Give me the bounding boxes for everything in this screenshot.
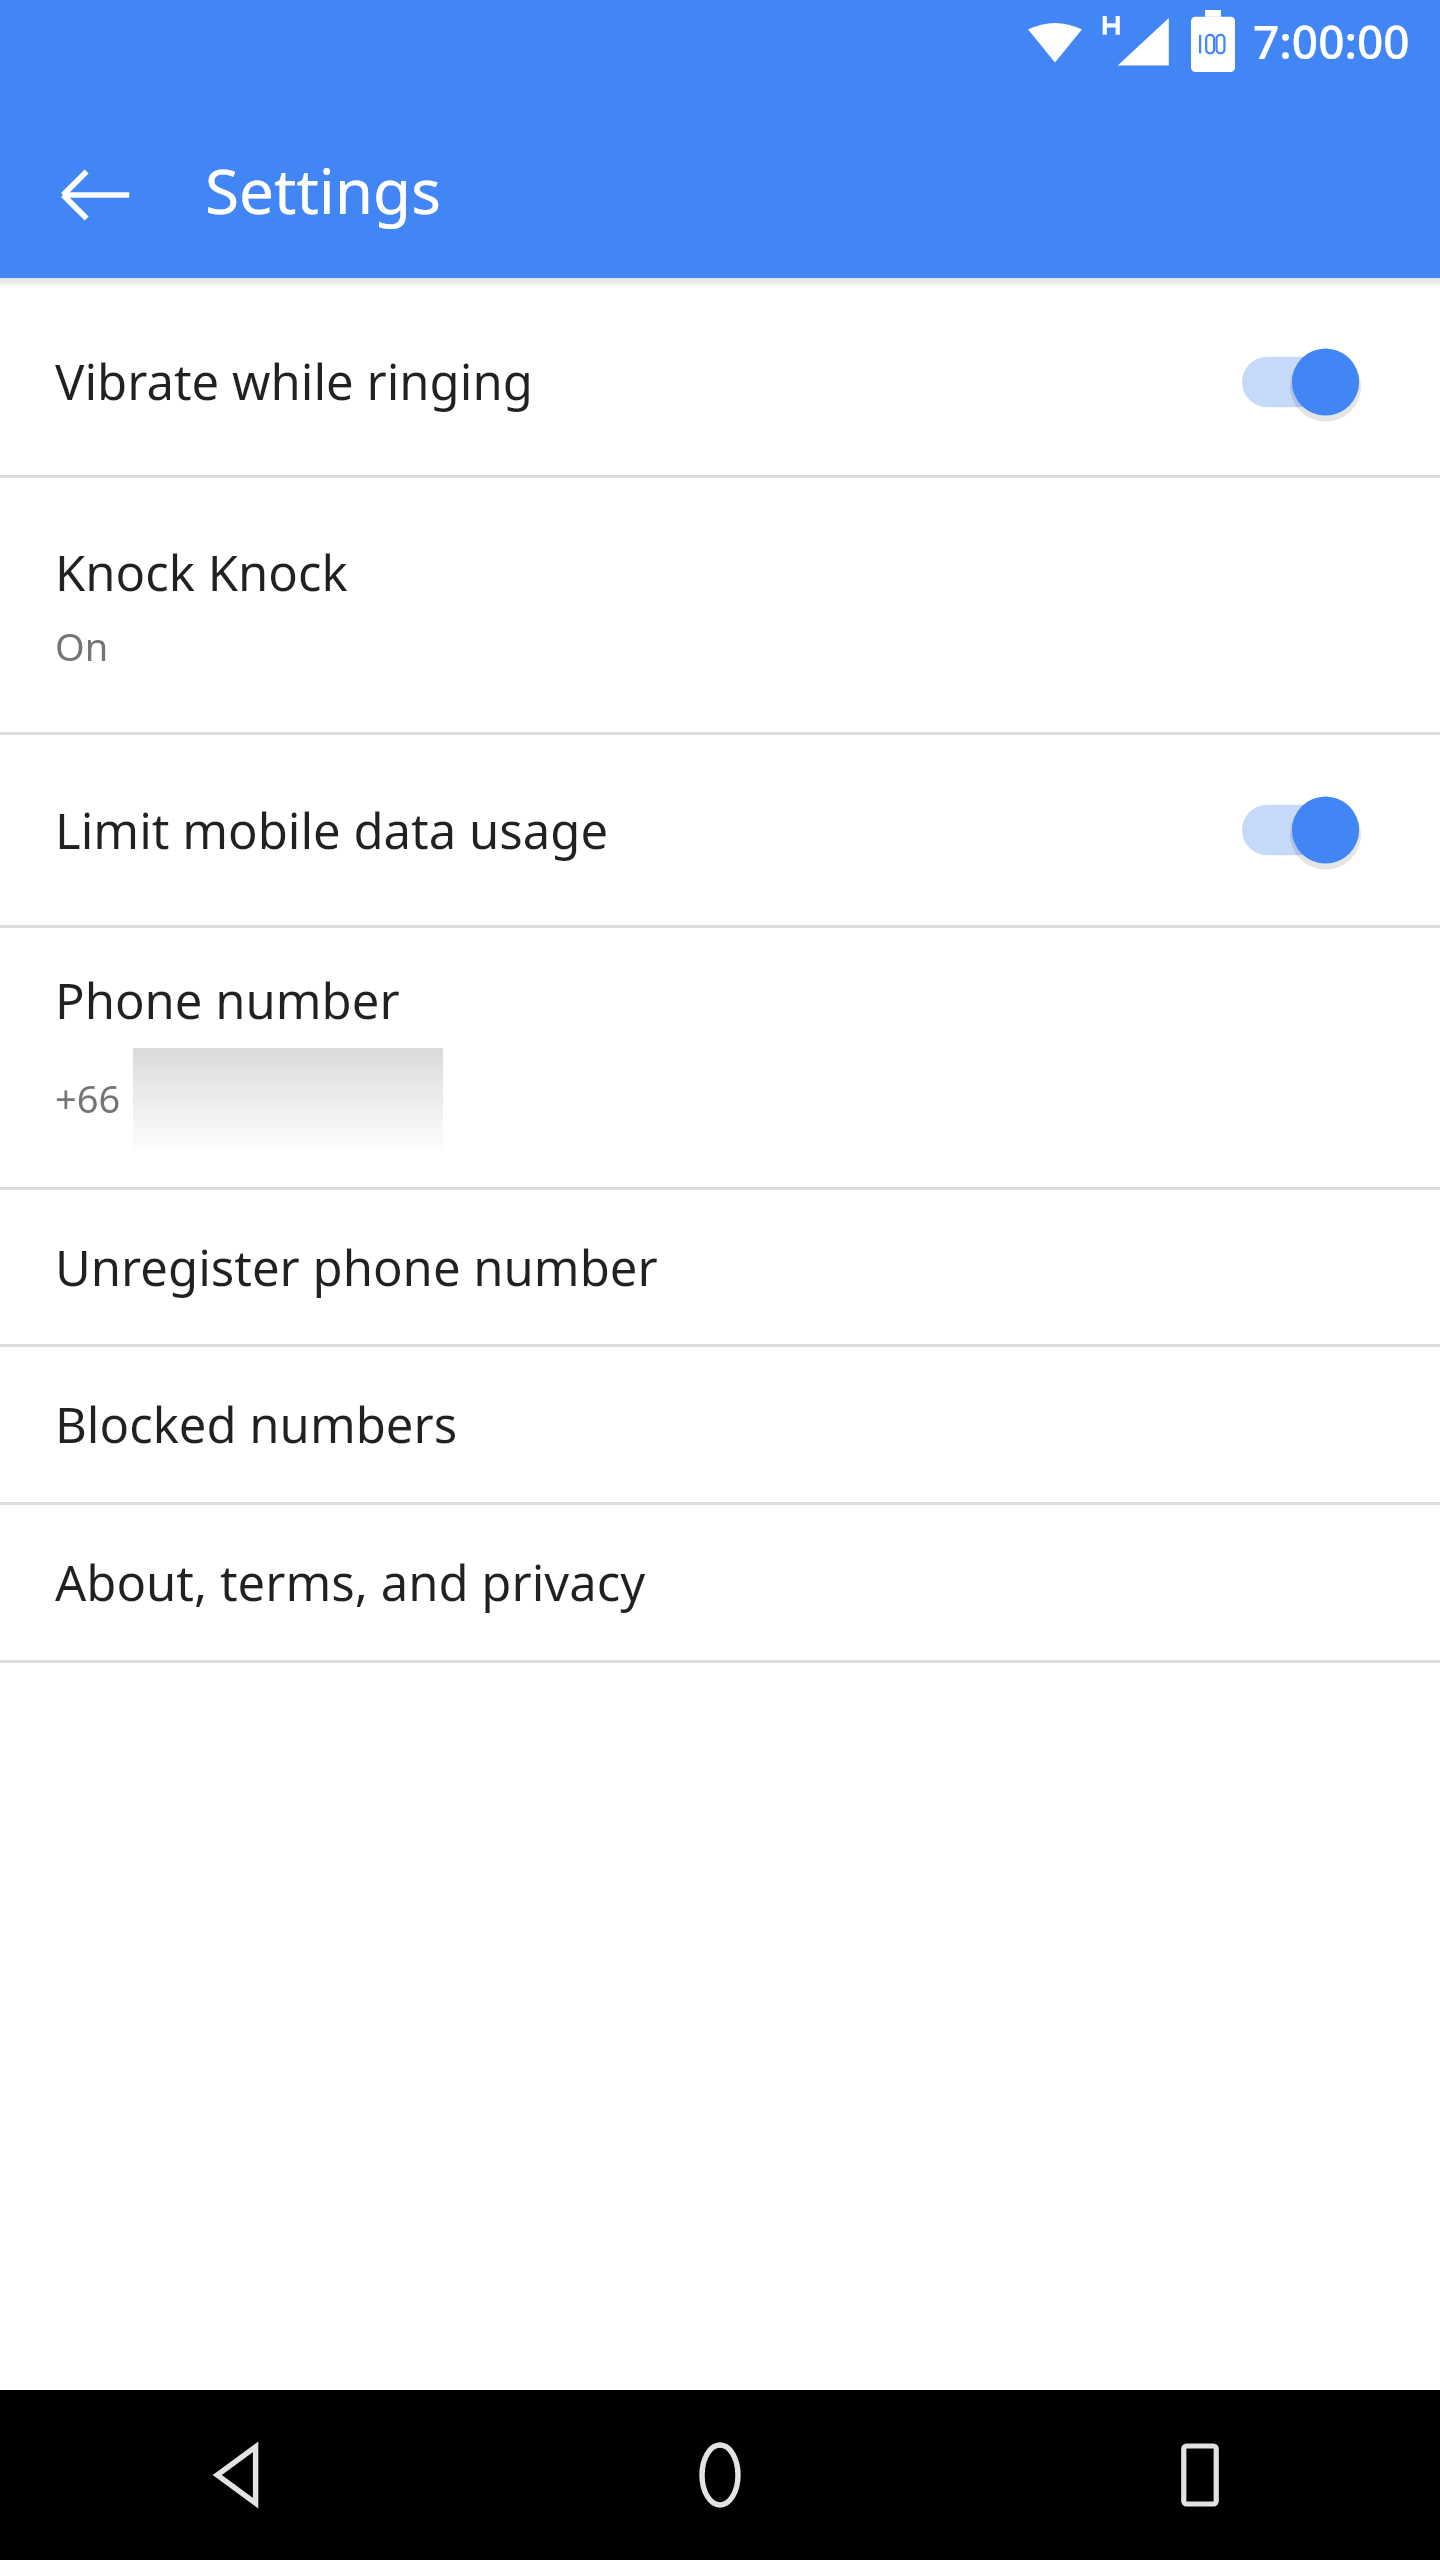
button[interactable]: Phone number <box>0 928 1440 1187</box>
staticText: Limit mobile data usage <box>55 797 1242 864</box>
staticText: Unregister phone number <box>55 1234 658 1301</box>
button[interactable]: Recent apps <box>1125 2400 1275 2550</box>
button[interactable]: Knock Knock <box>0 478 1440 732</box>
staticText: Vibrate while ringing <box>55 348 1242 415</box>
button[interactable]: About, terms, and privacy <box>0 1505 1440 1660</box>
button[interactable]: Limit mobile data usage <box>0 735 1440 925</box>
staticText: Blocked numbers <box>55 1391 458 1458</box>
staticText: 7:00:00 <box>1253 10 1410 73</box>
button[interactable]: Blocked numbers <box>0 1347 1440 1502</box>
button[interactable]: Vibrate while ringing <box>0 288 1440 475</box>
staticText: +66 <box>55 1072 121 1124</box>
button[interactable]: Back <box>165 2400 315 2550</box>
staticText: Phone number <box>55 967 400 1034</box>
staticText: Settings <box>205 148 441 232</box>
staticText: About, terms, and privacy <box>55 1549 646 1616</box>
button[interactable]: Back <box>35 135 155 255</box>
button[interactable]: Toggle setting <box>1242 340 1362 424</box>
button[interactable]: Unregister phone number <box>0 1190 1440 1344</box>
staticText: On <box>55 620 109 672</box>
button[interactable]: Toggle setting <box>1242 788 1362 872</box>
staticText: Knock Knock <box>55 539 348 606</box>
button[interactable]: Home <box>645 2400 795 2550</box>
